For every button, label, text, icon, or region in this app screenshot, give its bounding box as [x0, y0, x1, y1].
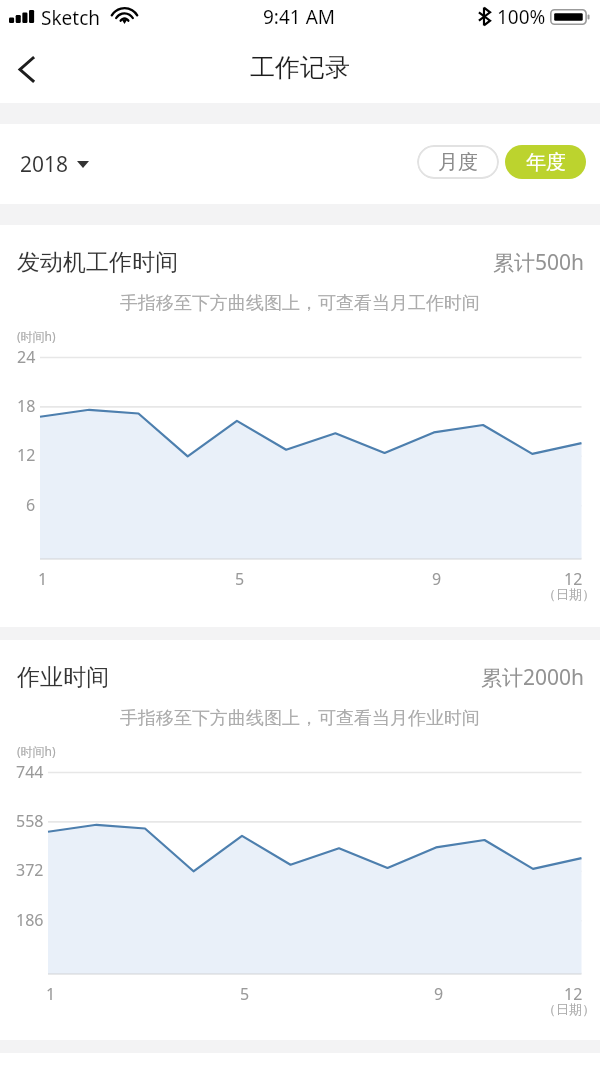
staticText: 744	[16, 761, 44, 781]
staticText: 9	[432, 568, 442, 588]
staticText: 年度	[526, 150, 566, 175]
staticText: 12	[17, 444, 36, 464]
staticText: (时间h)	[17, 328, 56, 344]
button[interactable]: Back	[0, 42, 52, 103]
staticText: 5	[240, 983, 250, 1003]
staticText: 372	[16, 859, 44, 879]
staticText: 累计500h	[493, 248, 585, 277]
button[interactable]: 月度	[417, 145, 499, 179]
staticText: （日期）	[543, 1001, 595, 1017]
button[interactable]: 作业时间	[0, 640, 600, 1040]
staticText: 5	[235, 568, 245, 588]
staticText: 9	[434, 983, 444, 1003]
staticText: (时间h)	[17, 743, 56, 759]
button[interactable]: 年度	[505, 145, 586, 179]
staticText: 1	[38, 568, 48, 588]
staticText: 18	[17, 395, 36, 415]
staticText: 186	[16, 909, 44, 929]
staticText: 累计2000h	[481, 663, 585, 692]
staticText: （日期）	[543, 586, 595, 602]
staticText: 24	[17, 346, 36, 366]
staticText: 100%	[497, 4, 546, 30]
staticText: Sketch	[41, 5, 101, 31]
staticText: 1	[46, 983, 56, 1003]
staticText: 作业时间	[17, 663, 109, 692]
staticText: 9:41 AM	[263, 4, 336, 30]
staticText: 6	[26, 494, 36, 514]
button[interactable]: 2018	[18, 142, 91, 187]
staticText: 12	[564, 568, 583, 588]
staticText: 手指移至下方曲线图上，可查看当月工作时间	[120, 292, 480, 315]
staticText: 12	[564, 983, 583, 1003]
staticText: 工作记录	[250, 52, 350, 83]
staticText: 558	[16, 810, 44, 830]
staticText: 2018	[20, 150, 69, 179]
staticText: 月度	[438, 150, 478, 175]
staticText: 手指移至下方曲线图上，可查看当月作业时间	[120, 707, 480, 730]
staticText: 发动机工作时间	[17, 248, 178, 277]
button[interactable]: 发动机工作时间	[0, 225, 600, 627]
